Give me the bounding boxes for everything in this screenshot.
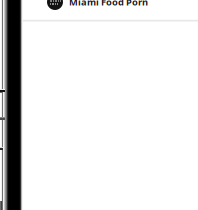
button[interactable]: Miami Food Porn [47, 0, 148, 10]
staticText: Miami Food Porn [69, 0, 148, 8]
